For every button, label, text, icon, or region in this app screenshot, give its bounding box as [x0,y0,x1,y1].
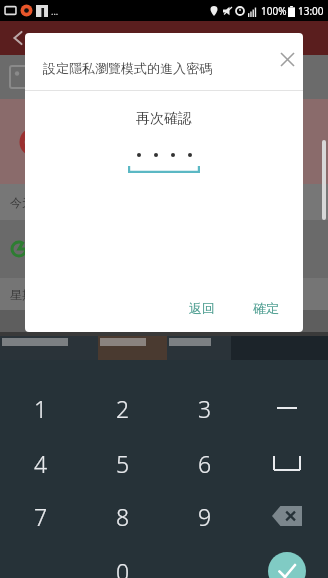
staticText: 1 [34,393,48,424]
staticText: 6 [198,448,212,479]
staticText: 13:00 [298,4,324,18]
button[interactable]: Delete [246,493,328,539]
button[interactable]: Close [271,43,303,75]
button[interactable]: 2 [82,385,164,431]
staticText: 7 [34,501,48,532]
button[interactable]: Space [246,440,328,486]
button[interactable]: 5 [82,440,164,486]
staticText: 0 [116,556,130,578]
staticText: 今天 [10,195,34,210]
staticText: 設定隱私瀏覽模式的進入密碼 [43,60,212,76]
button[interactable]: 4 [0,440,82,486]
staticText: 返回 [189,300,215,316]
staticText: ... [51,5,59,17]
staticText: 再次確認 [136,110,192,128]
button[interactable]: Confirm [246,548,328,578]
button[interactable]: 返回 [177,292,227,324]
staticText: 8 [116,501,130,532]
button[interactable]: Dash [246,385,328,431]
staticText: 確定 [253,300,279,316]
button[interactable]: 7 [0,493,82,539]
staticText: 4 [34,448,48,479]
button[interactable]: 確定 [241,292,291,324]
staticText: 5 [116,448,130,479]
staticText: 星期 [10,287,34,302]
staticText: 9 [198,501,212,532]
button[interactable]: 9 [164,493,246,539]
staticText: 100% [261,4,287,18]
staticText: 2 [116,393,130,424]
button[interactable]: 6 [164,440,246,486]
staticText: 3 [198,393,212,424]
button[interactable]: 3 [164,385,246,431]
button[interactable]: 8 [82,493,164,539]
button[interactable]: 0 [82,548,164,578]
button[interactable]: 1 [0,385,82,431]
